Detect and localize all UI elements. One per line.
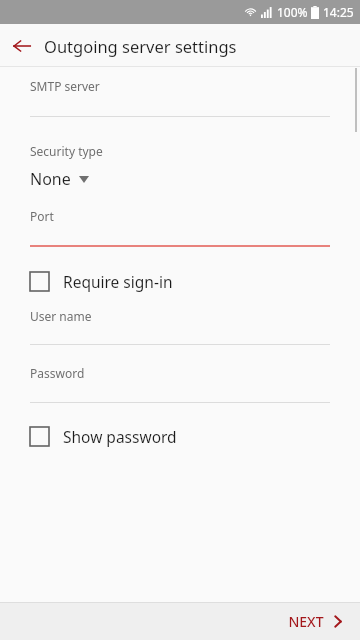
staticText: 100% (277, 4, 308, 20)
staticText: None (30, 168, 71, 190)
staticText: Port (30, 208, 54, 224)
button[interactable]: None (0, 166, 360, 192)
staticText: User name (30, 308, 92, 324)
staticText: NEXT (288, 612, 324, 631)
staticText: Require sign-in (63, 271, 173, 292)
staticText: Password (30, 365, 85, 381)
staticText: Outgoing server settings (44, 35, 237, 57)
staticText: Security type (30, 143, 103, 159)
staticText: SMTP server (30, 78, 100, 94)
button[interactable]: NEXT (270, 604, 360, 639)
staticText: 14:25 (323, 4, 354, 20)
button[interactable]: Show password (0, 420, 360, 453)
button[interactable]: Require sign-in (0, 265, 360, 298)
button[interactable]: Navigate up (0, 24, 44, 67)
staticText: Show password (63, 426, 177, 447)
